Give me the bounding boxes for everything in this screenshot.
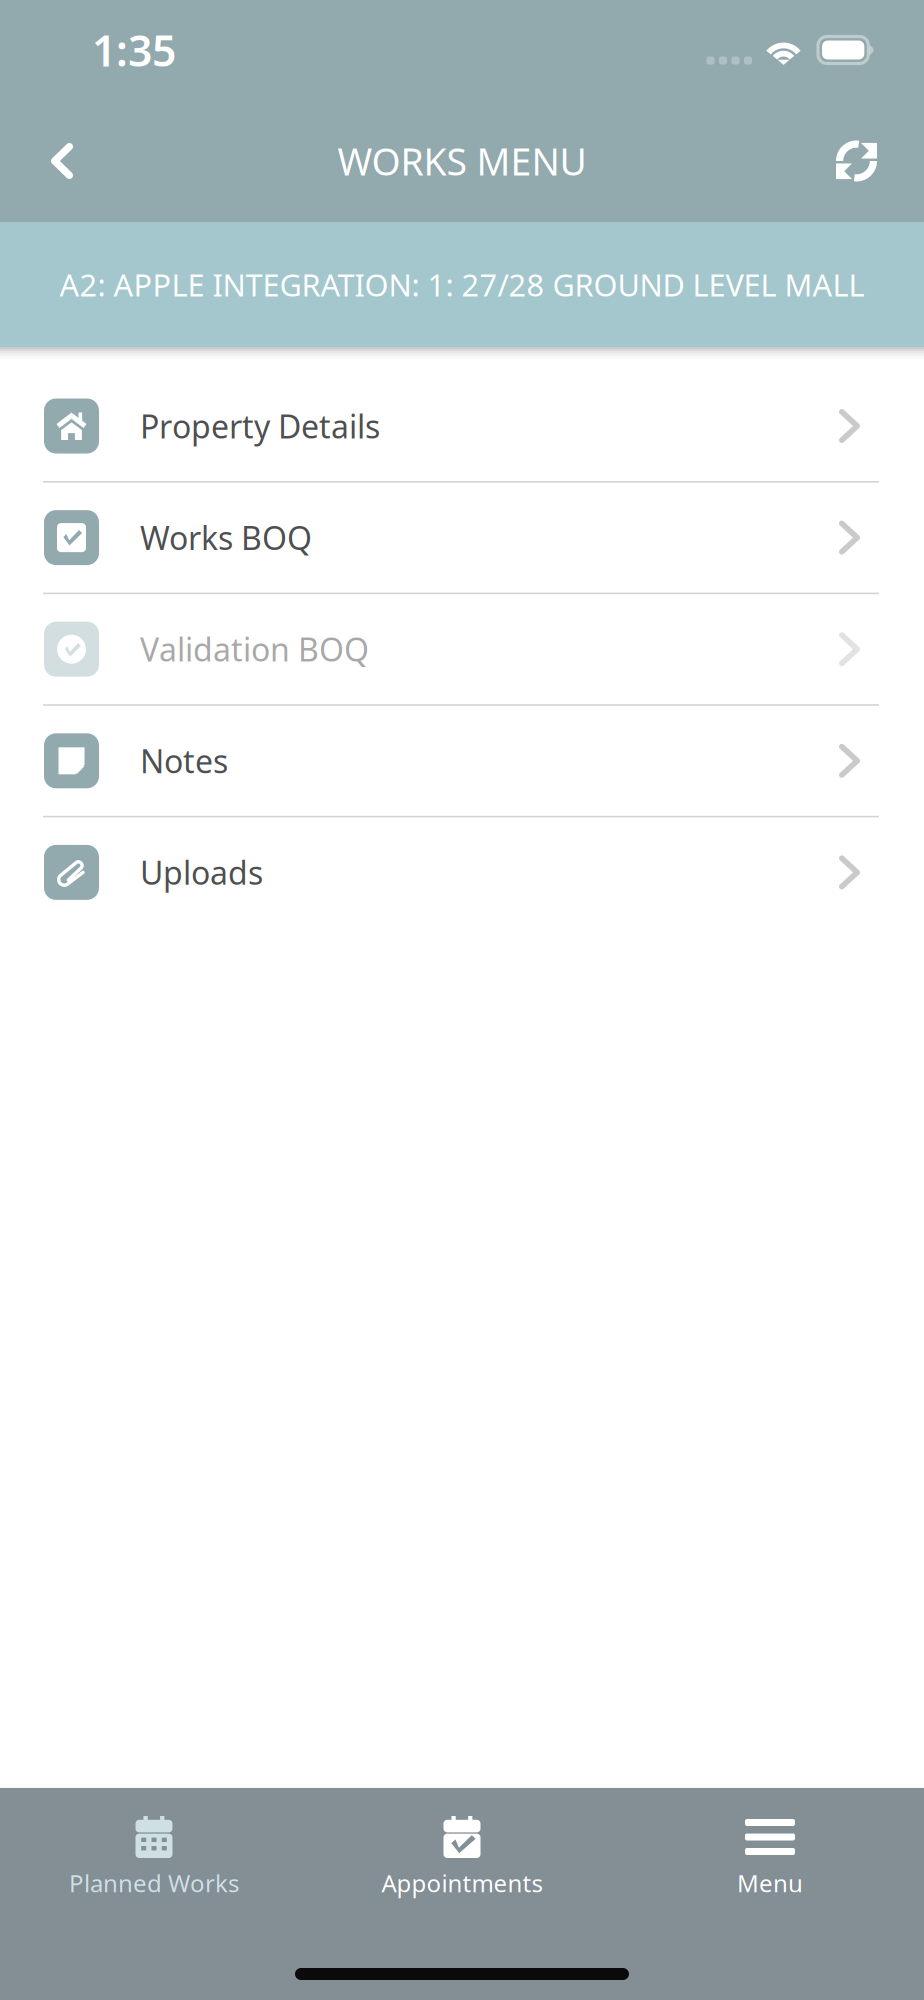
staticText: 1:35 [92,22,176,78]
button[interactable]: Uploads [0,817,924,927]
staticText: Uploads [140,851,263,894]
button[interactable]: Menu [616,1816,924,1899]
staticText: Menu [737,1867,803,1899]
staticText: Planned Works [69,1867,239,1899]
button[interactable]: Works BOQ [0,483,924,593]
staticText: Appointments [381,1867,542,1899]
staticText: A2: APPLE INTEGRATION: 1: 27/28 GROUND L… [59,264,864,305]
button[interactable]: Property Details [0,371,924,481]
staticText: WORKS MENU [337,136,586,186]
button[interactable]: Validation BOQ [0,594,924,704]
staticText: Notes [140,740,228,782]
button[interactable]: Appointments [308,1816,616,1899]
button[interactable]: Back [0,100,111,222]
button[interactable]: Notes [0,706,924,816]
staticText: Property Details [140,405,380,447]
button[interactable]: Planned Works [0,1816,308,1899]
staticText: Works BOQ [140,516,312,559]
staticText: Validation BOQ [140,628,369,670]
button[interactable]: Refresh [798,100,924,222]
